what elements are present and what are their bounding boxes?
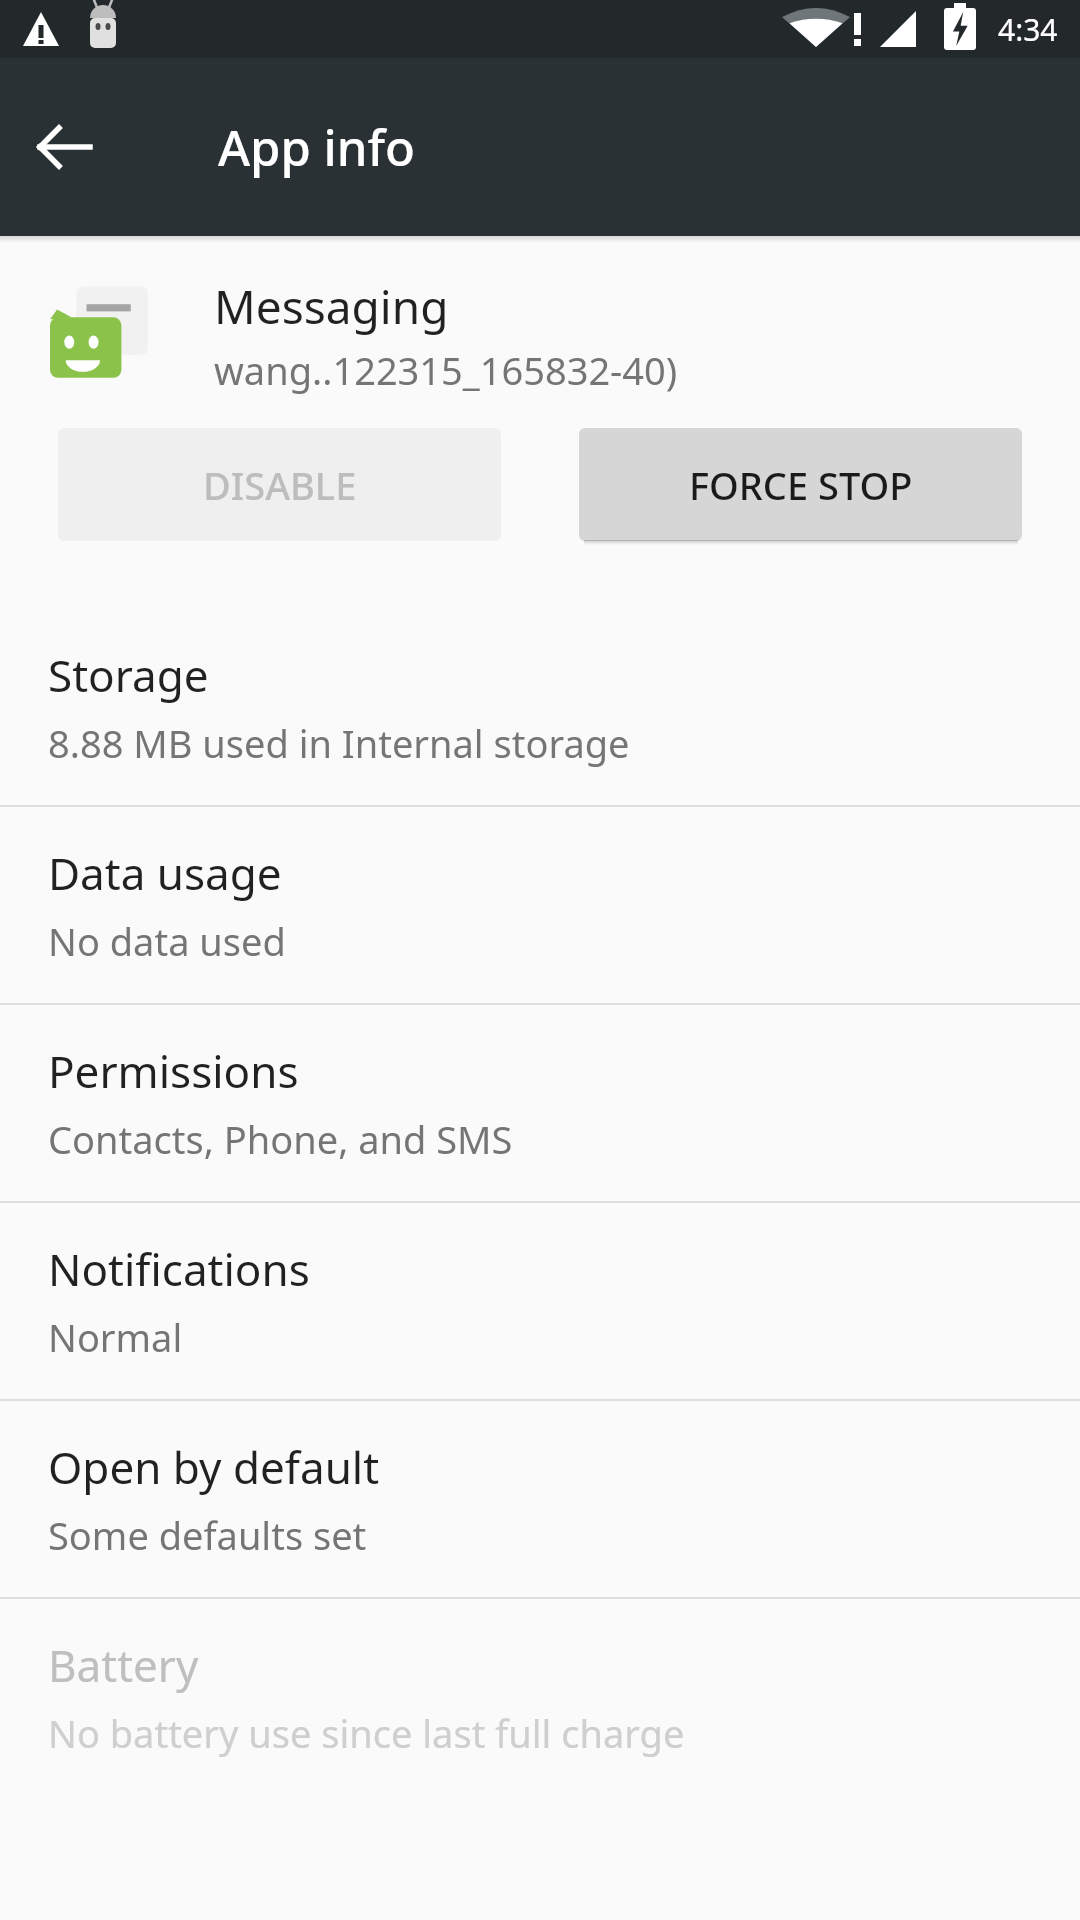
button[interactable]: Storage bbox=[0, 609, 1080, 805]
staticText: Data usage bbox=[48, 843, 282, 903]
staticText: 8.88 MB used in Internal storage bbox=[48, 717, 630, 769]
staticText: No data used bbox=[48, 915, 286, 967]
staticText: wang..122315_165832-40) bbox=[214, 344, 678, 396]
staticText: 4:34 bbox=[998, 9, 1058, 50]
staticText: Battery bbox=[48, 1635, 199, 1695]
staticText: Messaging bbox=[214, 275, 449, 338]
staticText: Open by default bbox=[48, 1437, 380, 1497]
button[interactable]: Open by default bbox=[0, 1401, 1080, 1597]
staticText: Contacts, Phone, and SMS bbox=[48, 1113, 513, 1165]
button[interactable]: Back bbox=[22, 104, 108, 190]
button[interactable]: Battery bbox=[0, 1599, 1080, 1795]
button[interactable]: FORCE STOP bbox=[579, 428, 1022, 541]
staticText: App info bbox=[218, 114, 415, 181]
staticText: Notifications bbox=[48, 1239, 310, 1299]
staticText: No battery use since last full charge bbox=[48, 1707, 685, 1759]
staticText: DISABLE bbox=[203, 459, 357, 511]
staticText: Storage bbox=[48, 645, 209, 705]
button[interactable]: Permissions bbox=[0, 1005, 1080, 1201]
staticText: Permissions bbox=[48, 1041, 299, 1101]
staticText: FORCE STOP bbox=[689, 459, 913, 511]
button[interactable]: Notifications bbox=[0, 1203, 1080, 1399]
staticText: Some defaults set bbox=[48, 1509, 367, 1561]
button[interactable]: Data usage bbox=[0, 807, 1080, 1003]
staticText: Normal bbox=[48, 1311, 183, 1363]
button[interactable]: DISABLE bbox=[58, 428, 501, 541]
